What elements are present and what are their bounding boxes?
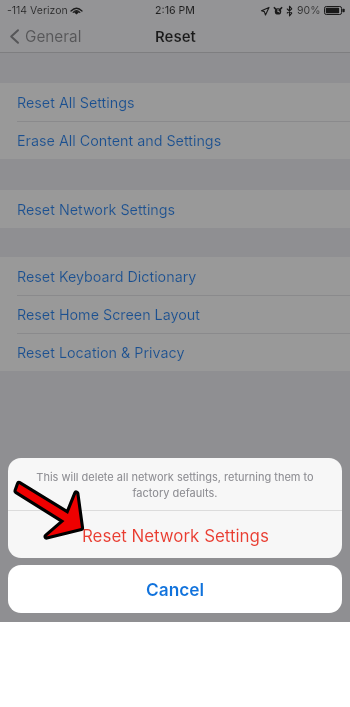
staticText: Reset Keyboard Dictionary [17,268,197,285]
button[interactable]: Reset Location & Privacy [0,334,350,371]
button[interactable]: Reset Home Screen Layout [0,296,350,333]
button[interactable]: Cancel [8,565,342,613]
button[interactable]: Reset Network Settings [0,190,350,228]
staticText: Reset [155,27,196,45]
staticText: Reset Network Settings [82,526,269,546]
button[interactable]: Reset Keyboard Dictionary [0,257,350,295]
button[interactable]: Reset Network Settings [8,511,342,558]
staticText: Erase All Content and Settings [17,132,222,149]
staticText: -114 Verizon [7,4,68,17]
staticText: Reset Location & Privacy [17,344,185,361]
staticText: Reset All Settings [17,94,135,111]
staticText: 2:16 PM [155,4,195,17]
button[interactable]: Erase All Content and Settings [0,122,350,159]
staticText: This will delete all network settings, r… [36,470,314,499]
button[interactable]: Reset All Settings [0,83,350,121]
staticText: Reset Network Settings [17,201,176,218]
button[interactable]: Back to General [10,28,82,47]
staticText: Reset Home Screen Layout [17,306,200,323]
staticText: General [25,27,82,46]
staticText: 90% [297,4,321,17]
staticText: Cancel [146,579,205,600]
